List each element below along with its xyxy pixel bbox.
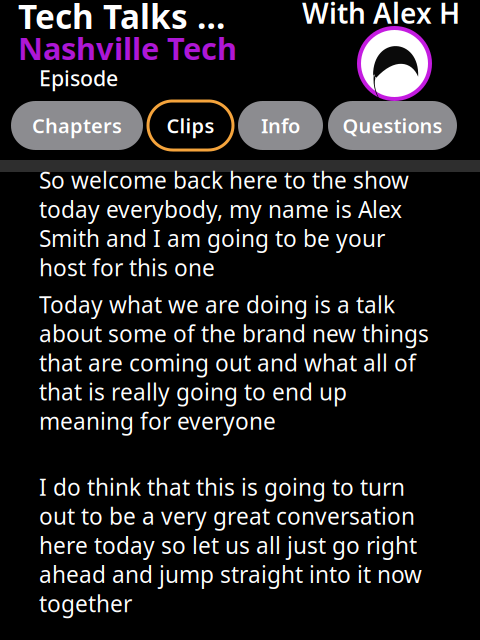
- button[interactable]: Clips: [148, 101, 233, 150]
- staticText: Info: [261, 112, 300, 139]
- staticText: Clips: [166, 112, 214, 139]
- staticText: So welcome back here to the show today e…: [39, 165, 409, 282]
- staticText: Nashville Tech: [18, 28, 237, 68]
- staticText: Tech Talks …: [18, 0, 226, 38]
- button[interactable]: Chapters: [11, 101, 143, 150]
- staticText: Chapters: [32, 112, 122, 139]
- button[interactable]: Profile: [357, 26, 432, 101]
- button[interactable]: Info: [238, 101, 323, 150]
- staticText: Today what we are doing is a talk about …: [39, 289, 429, 436]
- staticText: With Alex H: [302, 0, 460, 32]
- staticText: I do think that this is going to turn ou…: [39, 472, 422, 618]
- staticText: Episode: [39, 64, 118, 92]
- button[interactable]: Questions: [328, 101, 457, 150]
- staticText: Questions: [342, 112, 442, 139]
